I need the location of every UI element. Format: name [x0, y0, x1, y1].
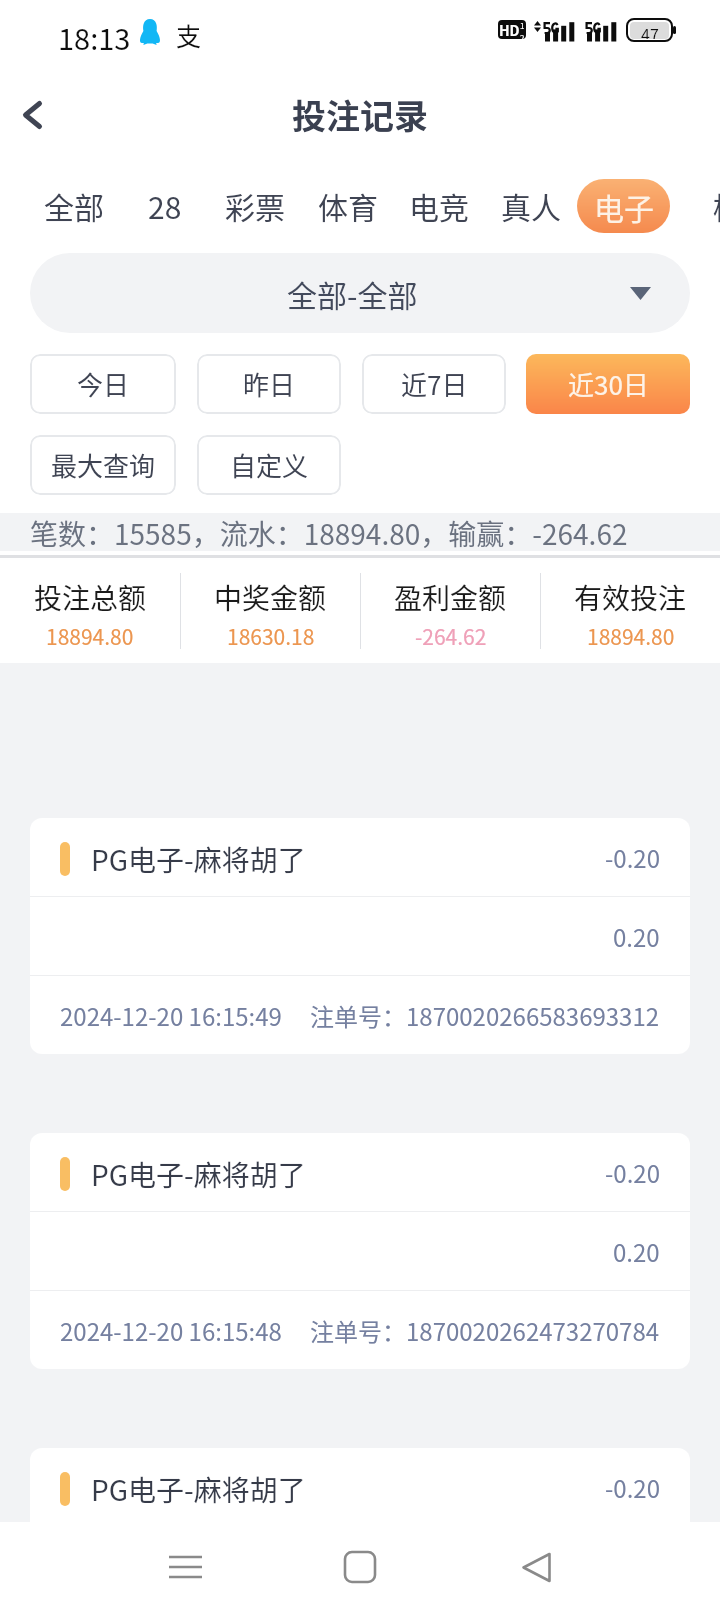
staticText: -0.20	[605, 840, 660, 875]
staticText: -0.20	[605, 1155, 660, 1190]
staticText: 近30日	[568, 365, 649, 403]
staticText: 有效投注	[574, 577, 687, 618]
staticText: 注单号：1870020266583693312	[310, 998, 660, 1033]
button[interactable]: 最大查询	[30, 435, 176, 495]
staticText: 昨日	[243, 365, 296, 403]
staticText: PG电子-麻将胡了	[91, 1469, 306, 1510]
button[interactable]: Home	[315, 1522, 405, 1612]
button[interactable]: 投注总额	[0, 558, 180, 663]
staticText: 笔数：15585，流水：18894.80，输赢：-264.62	[30, 513, 628, 551]
button[interactable]: 中奖金额	[181, 558, 360, 663]
staticText: 中奖金额	[214, 577, 327, 618]
button[interactable]: 盈利金额	[361, 558, 540, 663]
staticText: -264.62	[415, 621, 487, 651]
staticText: 18894.80	[46, 621, 134, 651]
staticText: 盈利金额	[394, 577, 507, 618]
button[interactable]: 自定义	[197, 435, 341, 495]
button[interactable]: 近30日	[526, 354, 690, 414]
staticText: 支	[176, 17, 202, 53]
staticText: 电竞	[409, 184, 469, 227]
button[interactable]: 昨日	[197, 354, 341, 414]
button[interactable]: 今日	[30, 354, 176, 414]
staticText: 全部-全部	[287, 272, 418, 315]
staticText: 体育	[318, 184, 378, 227]
button[interactable]: 全部	[44, 174, 104, 237]
staticText: 自定义	[230, 446, 309, 484]
staticText: PG电子-麻将胡了	[91, 839, 306, 880]
staticText: 近7日	[401, 365, 468, 403]
staticText: 棋	[713, 184, 720, 227]
button[interactable]: 有效投注	[541, 558, 720, 663]
button[interactable]: PG电子-麻将胡了	[30, 818, 690, 1054]
button[interactable]: Back	[4, 86, 60, 142]
button[interactable]: 全部-全部	[30, 253, 690, 333]
staticText: 0.20	[613, 919, 660, 954]
staticText: 47	[641, 22, 659, 39]
staticText: 投注记录	[292, 90, 428, 139]
button[interactable]: 体育	[318, 174, 378, 237]
button[interactable]: Back	[491, 1522, 581, 1612]
staticText: 全部	[44, 184, 104, 227]
staticText: 2024-12-20 16:15:48	[60, 1313, 282, 1348]
staticText: 1	[520, 20, 525, 32]
button[interactable]: 真人	[501, 174, 561, 237]
staticText: 2	[520, 32, 525, 39]
button[interactable]: 彩票	[225, 174, 285, 237]
staticText: 投注总额	[34, 577, 147, 618]
staticText: 2024-12-20 16:15:49	[60, 998, 282, 1033]
staticText: 电子	[594, 185, 654, 228]
staticText: -0.20	[605, 1470, 660, 1505]
staticText: 真人	[501, 184, 561, 227]
button[interactable]: Recent apps	[140, 1522, 230, 1612]
staticText: 最大查询	[51, 446, 156, 484]
staticText: 0.20	[613, 1234, 660, 1269]
button[interactable]: 电子	[577, 179, 670, 233]
button[interactable]: 近7日	[362, 354, 506, 414]
staticText: HD	[499, 20, 520, 39]
staticText: PG电子-麻将胡了	[91, 1154, 306, 1195]
staticText: 彩票	[225, 184, 285, 227]
staticText: 18630.18	[227, 621, 315, 651]
button[interactable]: 电竞	[409, 174, 469, 237]
button[interactable]: 28	[148, 174, 182, 237]
button[interactable]: PG电子-麻将胡了	[30, 1448, 690, 1612]
staticText: 今日	[77, 365, 130, 403]
staticText: 28	[148, 184, 182, 227]
staticText: 18:13	[58, 16, 131, 58]
button[interactable]: PG电子-麻将胡了	[30, 1133, 690, 1369]
staticText: 18894.80	[587, 621, 675, 651]
staticText: 注单号：1870020262473270784	[310, 1313, 660, 1348]
